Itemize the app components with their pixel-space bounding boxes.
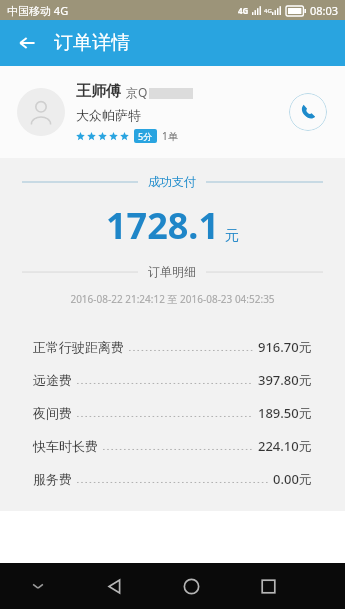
button[interactable]: 服务费 (0, 462, 345, 495)
staticText: 224.10元 (258, 437, 312, 455)
button[interactable]: 返回 (76, 563, 153, 609)
staticText: 中国移动 4G (7, 3, 69, 18)
staticText: 5分 (138, 130, 153, 142)
staticText: 正常行驶距离费 (33, 339, 124, 355)
staticText: 成功支付 (148, 174, 196, 189)
staticText: 京Q (126, 84, 148, 100)
staticText: 远途费 (33, 372, 72, 388)
staticText: 916.70元 (258, 338, 312, 356)
staticText: 189.50元 (258, 404, 312, 422)
button[interactable]: 夜间费 (0, 396, 345, 429)
button[interactable]: 主屏幕 (153, 563, 230, 609)
staticText: 1单 (162, 129, 178, 143)
staticText: 397.80元 (258, 371, 312, 389)
staticText: 4G (238, 5, 249, 16)
staticText: 2016-08-22 21:24:12 至 2016-08-23 04:52:3… (0, 292, 345, 306)
button[interactable]: 返回 (8, 24, 46, 62)
staticText: 服务费 (33, 471, 72, 487)
staticText: 订单明细 (148, 264, 196, 279)
staticText: 大众帕萨特 (76, 107, 141, 123)
staticText: 1728.1 (106, 201, 220, 250)
button[interactable]: 收起 (0, 563, 76, 609)
staticText: 订单详情 (54, 31, 130, 55)
staticText: 08:03 (310, 3, 339, 18)
button[interactable]: 正常行驶距离费 (0, 330, 345, 363)
button[interactable]: 远途费 (0, 363, 345, 396)
staticText: 快车时长费 (33, 438, 98, 454)
staticText: 元 (225, 227, 239, 245)
staticText: 王师傅 (76, 82, 121, 101)
staticText: 4G (264, 7, 272, 15)
button[interactable]: 最近任务 (230, 563, 307, 609)
button[interactable]: 快车时长费 (0, 429, 345, 462)
button[interactable]: 拨打电话 (289, 93, 327, 131)
staticText: 夜间费 (33, 405, 72, 421)
staticText: 0.00元 (273, 470, 312, 488)
